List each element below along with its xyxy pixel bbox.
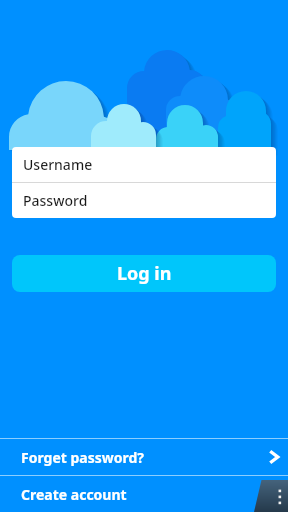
staticText: Log in bbox=[117, 261, 172, 286]
button[interactable]: More options bbox=[254, 480, 288, 512]
button[interactable]: Password bbox=[12, 183, 276, 218]
button[interactable]: Log in bbox=[12, 255, 276, 292]
button[interactable]: Create account bbox=[0, 476, 288, 512]
staticText: Password bbox=[23, 191, 88, 210]
button[interactable]: Forget password? bbox=[0, 439, 288, 475]
staticText: Create account bbox=[21, 485, 288, 504]
staticText: Forget password? bbox=[21, 448, 262, 467]
staticText: Username bbox=[23, 155, 93, 174]
button[interactable]: Username bbox=[12, 147, 276, 182]
